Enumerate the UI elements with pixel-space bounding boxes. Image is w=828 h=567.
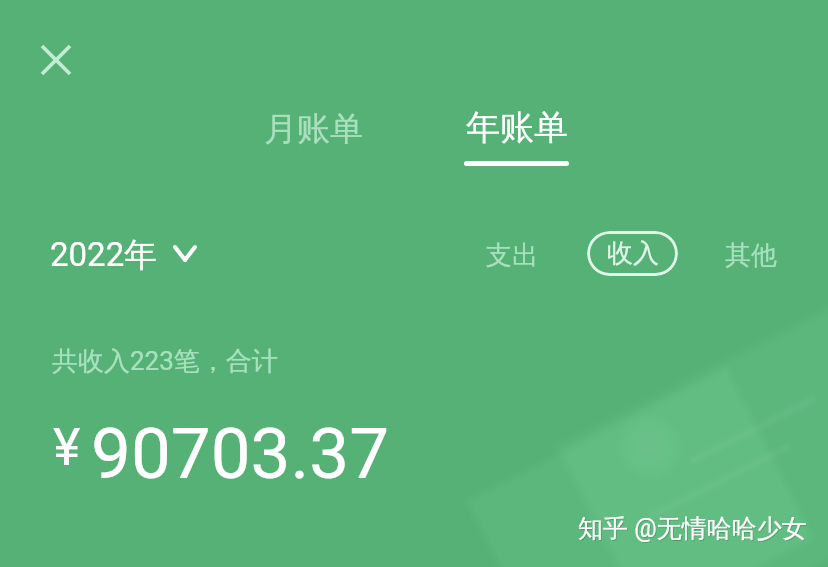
button[interactable]: 其他 [709,229,793,282]
button[interactable]: Close [26,30,86,90]
button[interactable]: 月账单 [248,98,379,160]
staticText: 共收入223笔，合计 [52,345,278,378]
staticText: 年账单 [466,106,568,149]
button[interactable]: 支出 [470,229,554,282]
staticText: 收入 [607,237,659,270]
staticText: 月账单 [264,108,363,150]
staticText: 90703.37 [91,412,390,495]
button[interactable]: 收入 [587,231,678,276]
staticText: 知乎 @无情哈哈少女 [579,514,808,545]
button[interactable]: 年账单 [448,96,585,176]
staticText: 2022年 [50,234,158,276]
staticText: ¥ [53,417,81,478]
button[interactable]: 2022年 [38,226,209,284]
staticText: 知乎 @无情哈哈少女 [578,513,807,544]
staticText: 其他 [725,239,777,272]
staticText: 支出 [486,239,538,272]
